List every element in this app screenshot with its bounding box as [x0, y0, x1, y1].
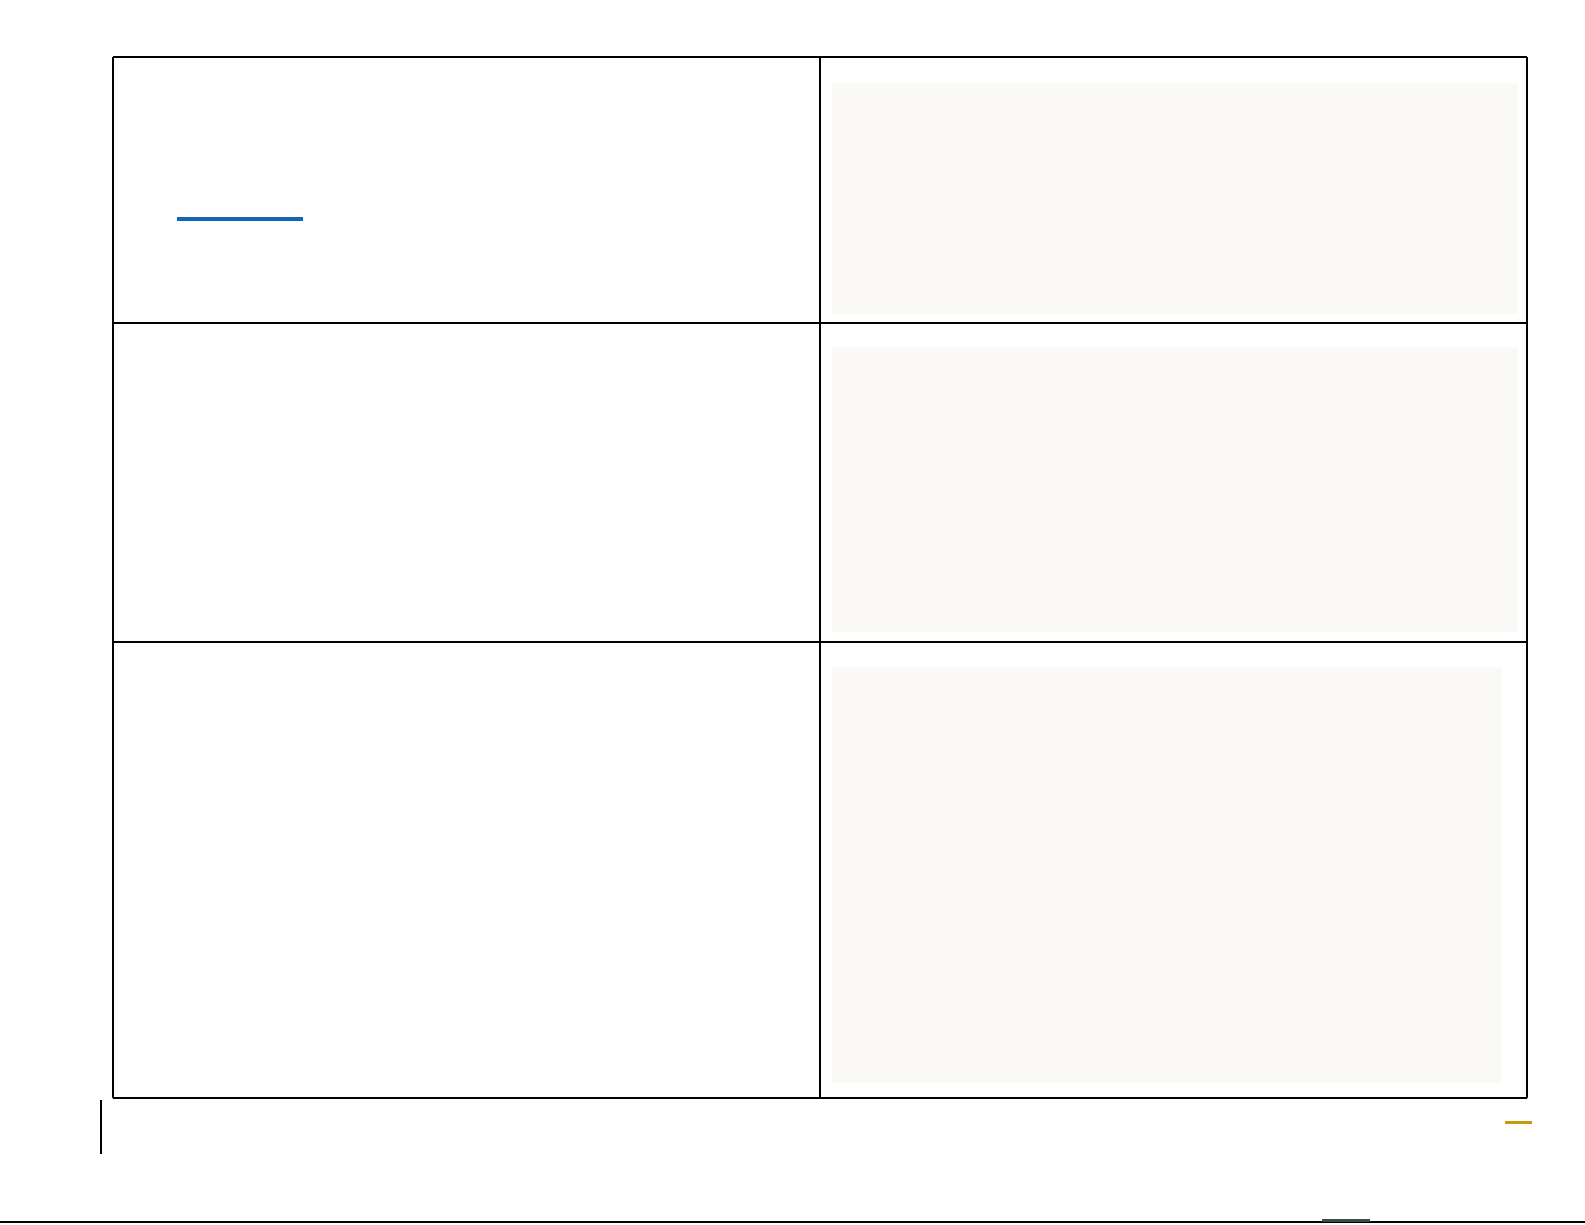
button[interactable]: Link [177, 205, 303, 221]
